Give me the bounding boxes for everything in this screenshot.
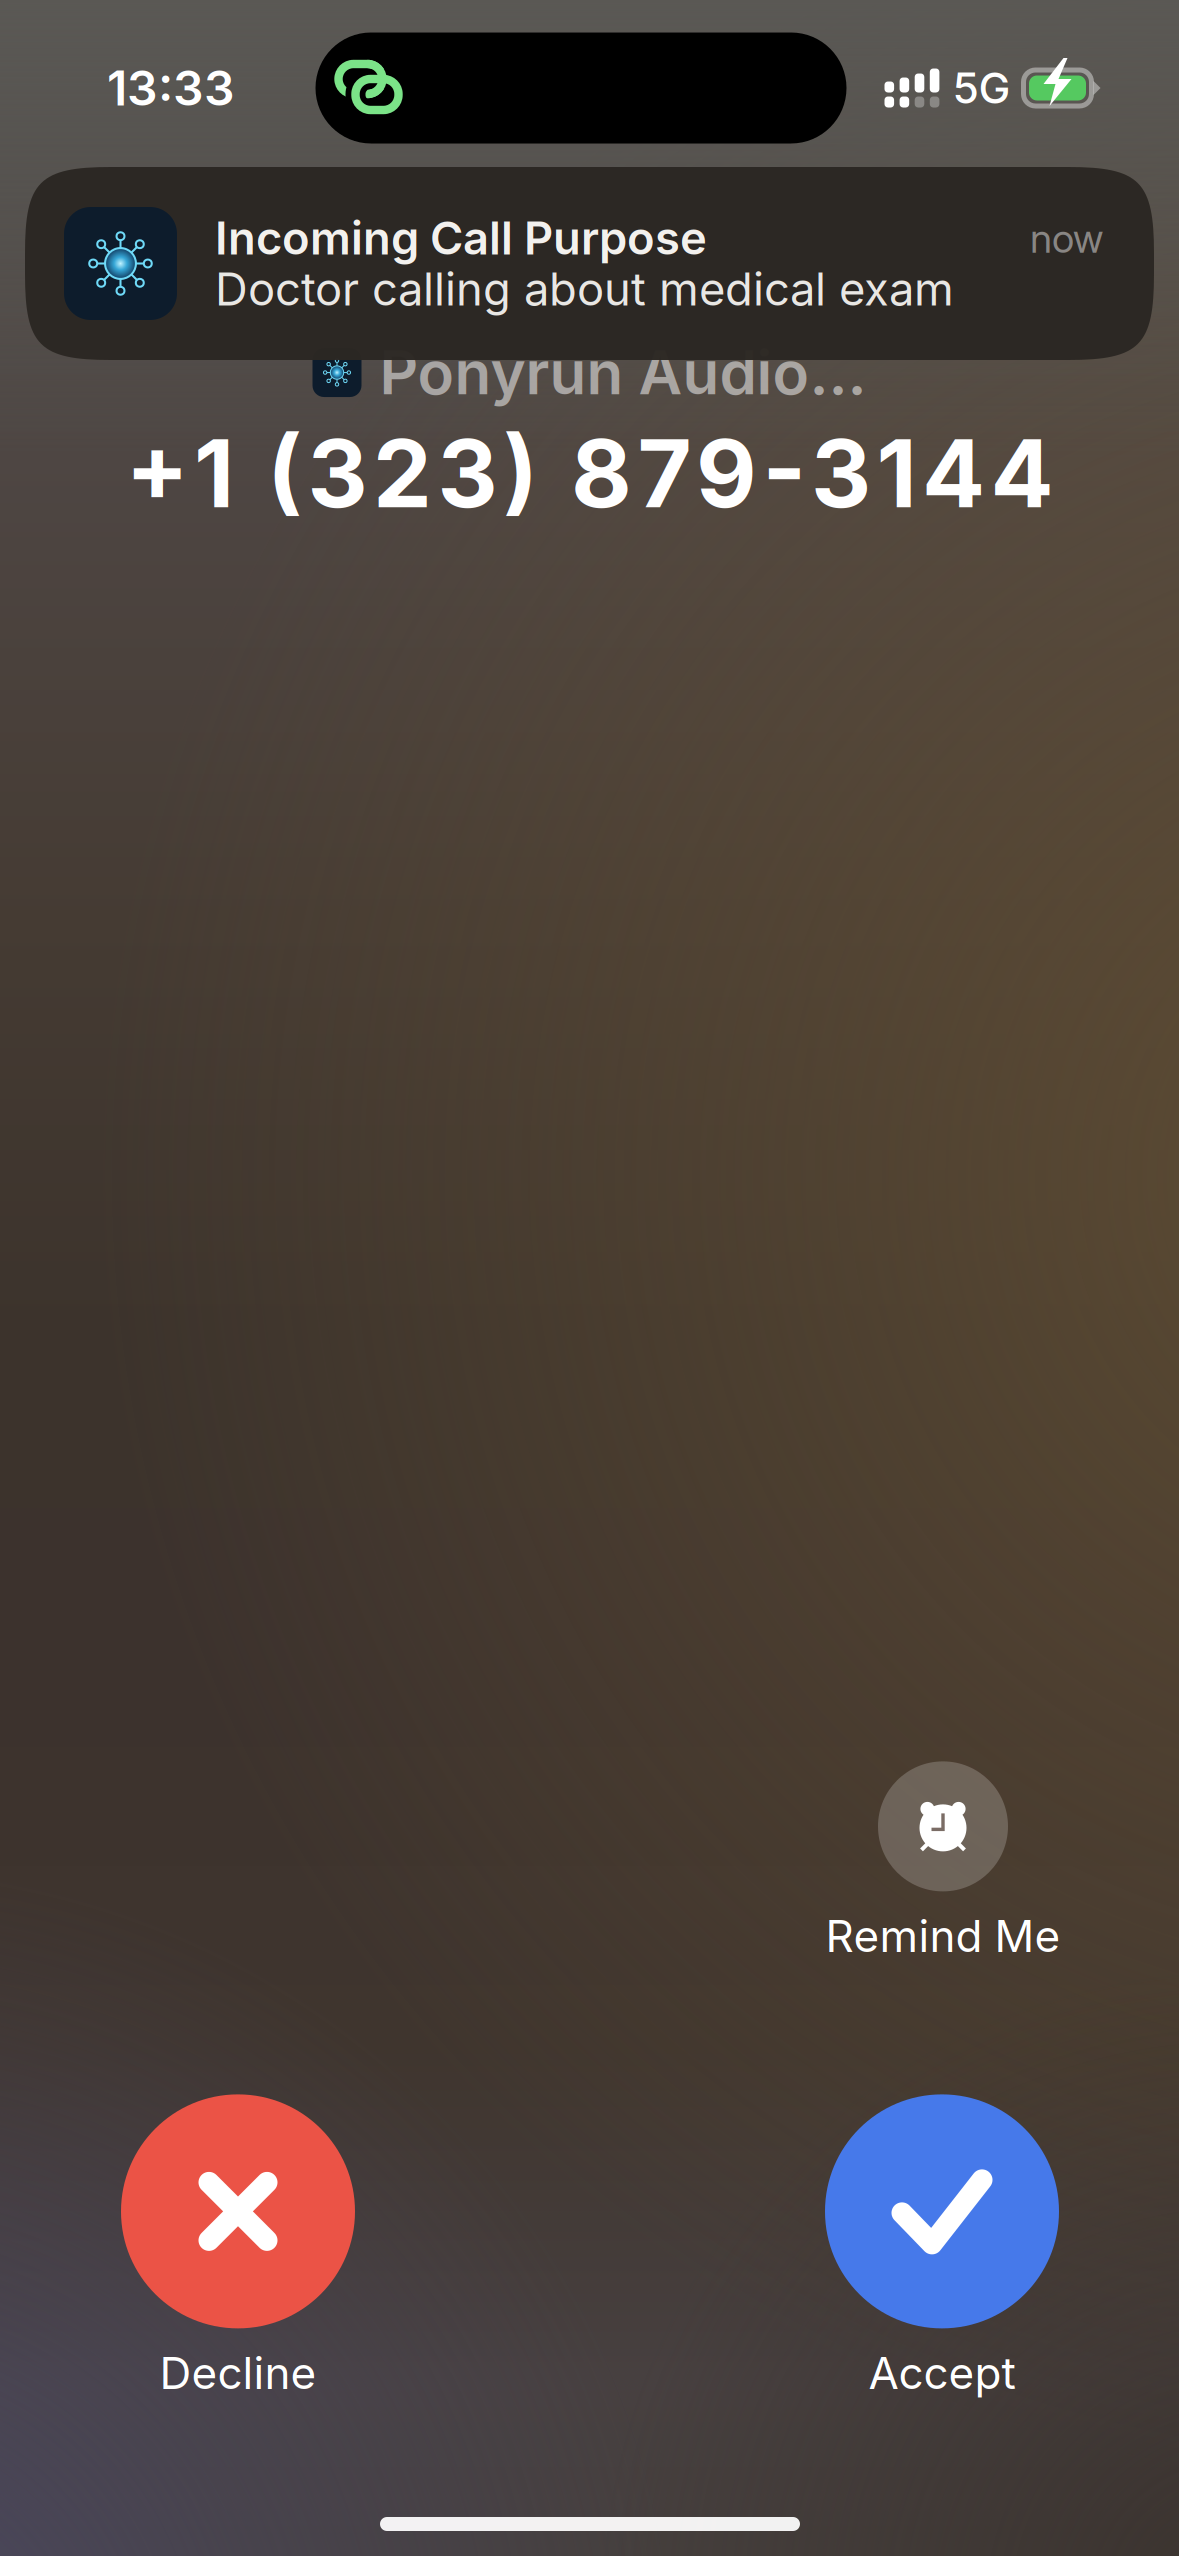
staticText: Ponyrun Audio... bbox=[379, 336, 866, 409]
staticText: Incoming Call Purpose bbox=[215, 211, 707, 265]
staticText: Decline bbox=[159, 2346, 316, 2400]
staticText: Accept bbox=[868, 2346, 1015, 2400]
button[interactable]: Accept bbox=[732, 2094, 1152, 2400]
button[interactable]: Remind Me bbox=[733, 1761, 1153, 1963]
button[interactable]: Decline bbox=[28, 2094, 448, 2400]
staticText: 5G bbox=[952, 62, 1010, 114]
button[interactable]: Incoming Call Purpose bbox=[25, 167, 1154, 360]
staticText: now bbox=[1030, 214, 1103, 262]
staticText: 13:33 bbox=[107, 59, 235, 117]
staticText: +1 (323) 879-3144 bbox=[125, 417, 1053, 530]
staticText: Remind Me bbox=[825, 1909, 1060, 1963]
staticText: Doctor calling about medical exam bbox=[215, 261, 954, 316]
